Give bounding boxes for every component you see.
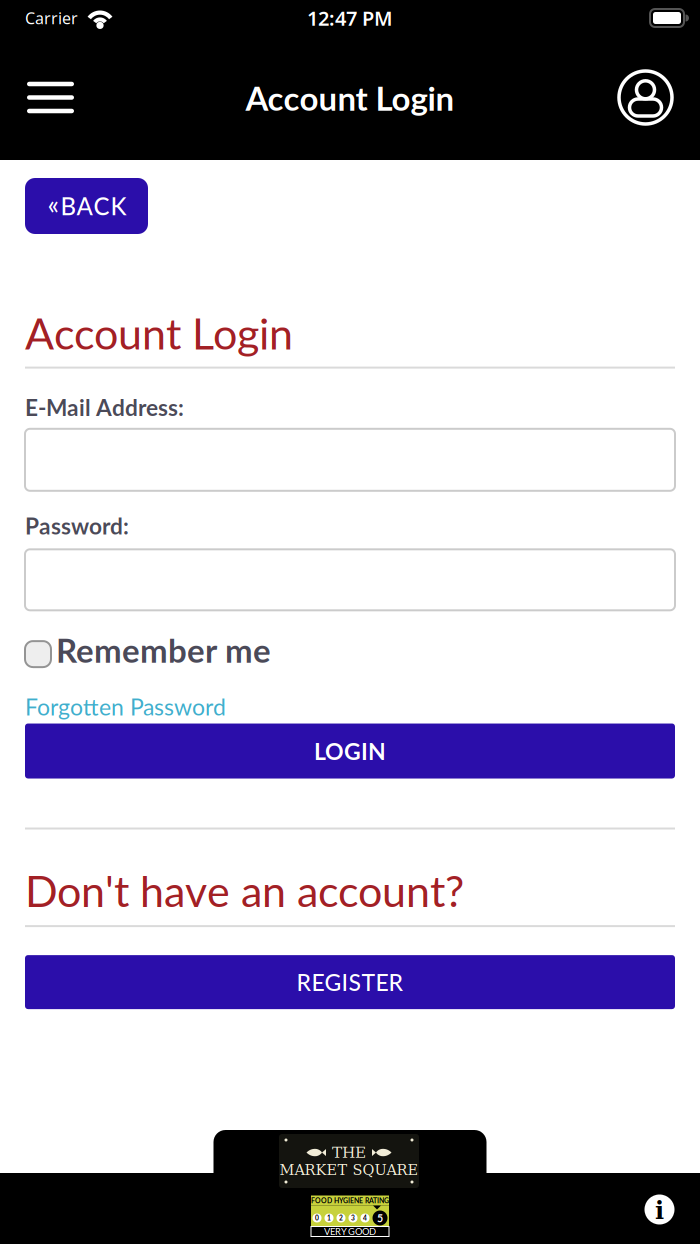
button[interactable]: Forgotten Password (0, 693, 226, 720)
staticText: Password: (25, 512, 129, 539)
staticText: 1 (327, 1214, 331, 1222)
staticText: 2 (339, 1214, 343, 1222)
staticText: Don't have an account? (25, 864, 464, 916)
button[interactable]: Info (644, 1194, 674, 1224)
staticText: Account Login (25, 307, 293, 359)
staticText: 12:47 PM (307, 5, 393, 31)
button[interactable]: REGISTER (25, 955, 675, 1009)
staticText: « (47, 188, 59, 220)
staticText: 3 (351, 1214, 355, 1222)
staticText: FOOD HYGIENE RATING (311, 1196, 389, 1205)
button[interactable]: Menu (0, 82, 74, 113)
staticText: E-Mail Address: (25, 394, 184, 421)
staticText: 0 (315, 1214, 319, 1222)
button[interactable]: Password (0, 549, 675, 610)
staticText: THE (332, 1144, 366, 1161)
button[interactable]: LOGIN (25, 723, 675, 778)
staticText: VERY GOOD (324, 1226, 376, 1237)
staticText: Forgotten Password (25, 693, 226, 720)
staticText: BACK (60, 192, 126, 220)
staticText: REGISTER (296, 968, 403, 996)
staticText: Carrier (25, 7, 78, 29)
button[interactable]: Food Hygiene Rating 5 — Very Good (311, 1195, 389, 1236)
button[interactable]: Remember me (0, 630, 271, 670)
staticText: Account Login (245, 78, 454, 118)
staticText: 4 (363, 1214, 367, 1222)
staticText: Remember me (56, 630, 271, 670)
staticText: LOGIN (314, 737, 386, 765)
staticText: i (655, 1196, 664, 1225)
button[interactable]: E-Mail Address (0, 429, 675, 491)
staticText: MARKET SQUARE (279, 1161, 418, 1178)
staticText: 5 (377, 1212, 383, 1224)
button[interactable]: « (25, 178, 148, 234)
button[interactable]: Account (619, 71, 700, 124)
